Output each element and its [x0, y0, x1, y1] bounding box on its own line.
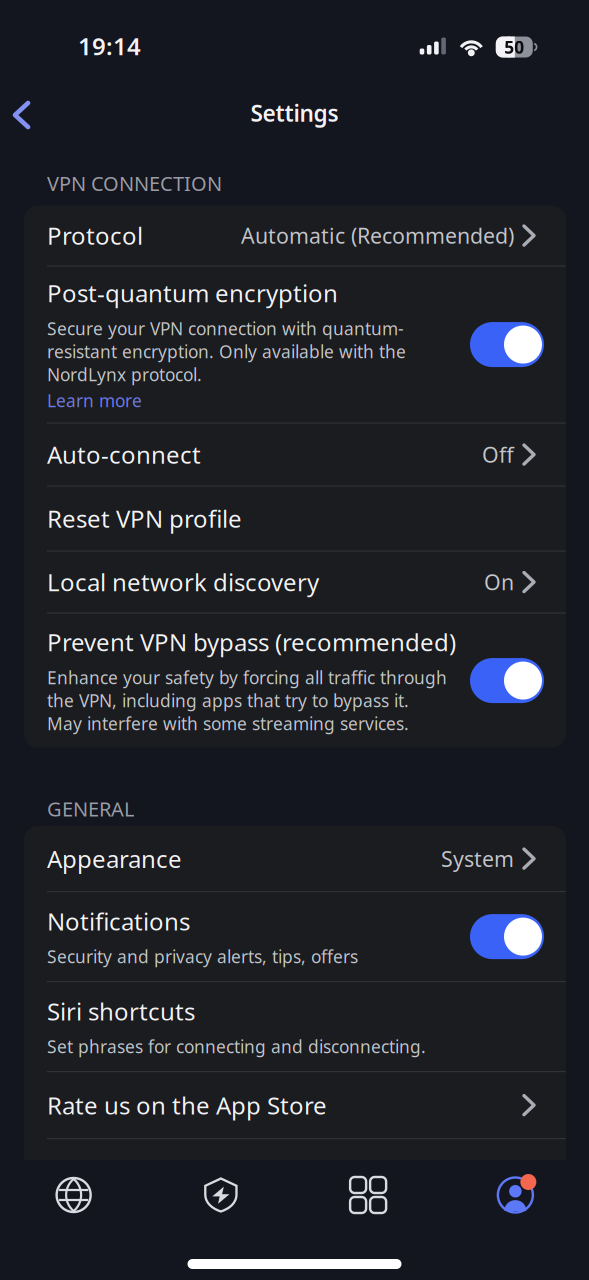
button[interactable]: Threat Protection — [147, 1177, 294, 1213]
staticText: NordLynx protocol. — [47, 363, 202, 386]
staticText: Off — [482, 440, 514, 469]
button[interactable]: Terms of Service — [24, 1139, 566, 1205]
button[interactable]: Servers — [0, 1178, 147, 1212]
staticText: System — [441, 844, 514, 873]
staticText: Rate us on the App Store — [47, 1089, 327, 1121]
staticText: Prevent VPN bypass (recommended) — [47, 626, 456, 658]
staticText: resistant encryption. Only available wit… — [47, 340, 406, 363]
staticText: Enhance your safety by forcing all traff… — [47, 666, 447, 689]
staticText: Settings — [250, 98, 338, 128]
staticText: VPN CONNECTION — [47, 170, 222, 197]
staticText: Protocol — [47, 220, 143, 251]
button[interactable]: Appearance — [24, 826, 566, 891]
staticText: May interfere with some streaming servic… — [47, 712, 409, 735]
staticText: Siri shortcuts — [47, 995, 195, 1027]
button[interactable]: Profile — [442, 1174, 589, 1216]
button[interactable]: Back — [0, 87, 55, 142]
staticText: GENERAL — [47, 796, 134, 822]
staticText: Post-quantum encryption — [47, 277, 338, 309]
staticText: the VPN, including apps that try to bypa… — [47, 689, 409, 712]
button[interactable]: Learn more — [47, 389, 142, 412]
button[interactable]: Protocol — [24, 206, 566, 266]
staticText: Notifications — [47, 905, 190, 937]
button[interactable]: Auto-connect — [24, 424, 566, 486]
staticText: Automatic (Recommended) — [241, 221, 514, 250]
staticText: Set phrases for connecting and disconnec… — [47, 1035, 426, 1058]
button[interactable]: Local network discovery — [24, 552, 566, 613]
staticText: Terms of Service — [47, 1156, 232, 1188]
staticText: Appearance — [47, 843, 182, 875]
staticText: Learn more — [47, 389, 142, 412]
staticText: Local network discovery — [47, 566, 319, 598]
staticText: Secure your VPN connection with quantum- — [47, 317, 404, 340]
staticText: 50 — [504, 35, 524, 58]
button[interactable]: Tools — [294, 1177, 442, 1213]
staticText: Auto-connect — [47, 439, 201, 470]
staticText: On — [484, 568, 514, 596]
staticText: Security and privacy alerts, tips, offer… — [47, 945, 358, 968]
button[interactable]: Reset VPN profile — [24, 487, 566, 551]
button[interactable]: Siri shortcuts — [24, 982, 566, 1071]
staticText: Reset VPN profile — [47, 503, 242, 534]
button[interactable]: Rate us on the App Store — [24, 1072, 566, 1138]
staticText: 19:14 — [78, 30, 141, 62]
